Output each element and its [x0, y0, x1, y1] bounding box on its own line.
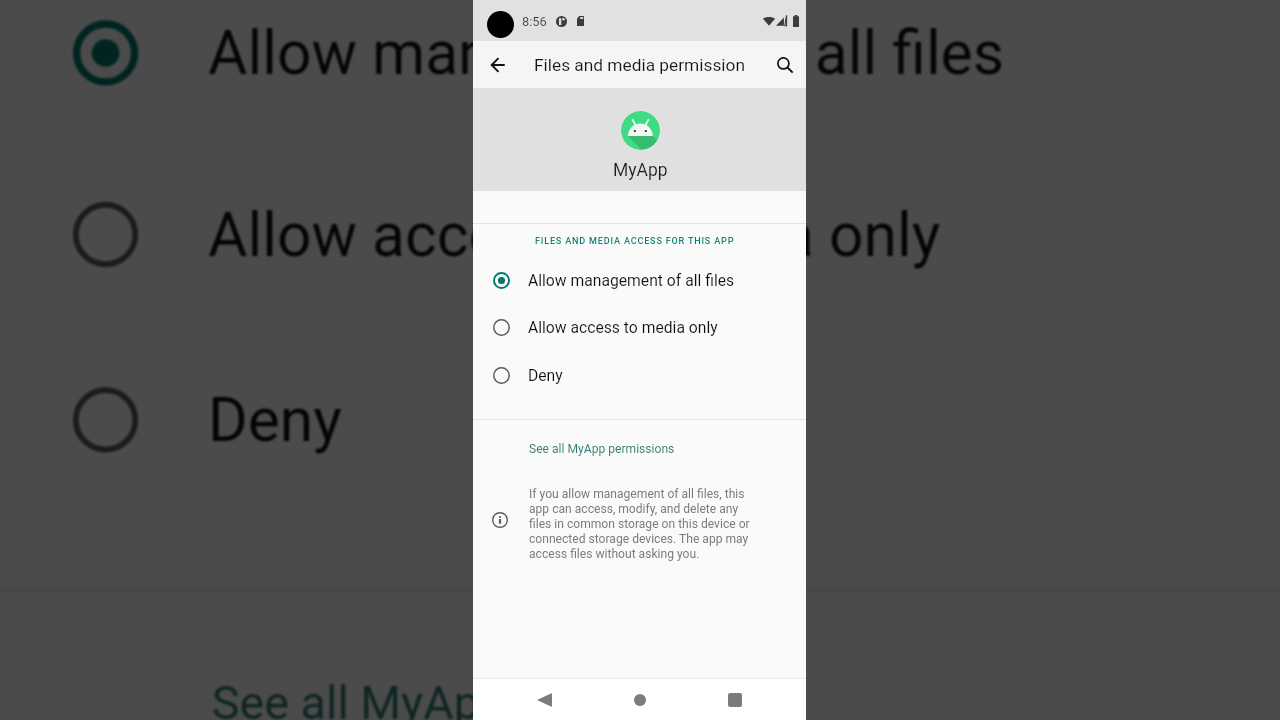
button[interactable]: Allow access to media only: [0, 140, 1280, 325]
staticText: See all MyApp permissions: [212, 677, 776, 720]
button[interactable]: Allow access to media only: [473, 303, 806, 351]
staticText: Deny: [528, 366, 563, 384]
staticText: MyApp: [613, 160, 668, 181]
staticText: Allow access to media only: [528, 318, 718, 336]
staticText: Allow management of all files: [208, 16, 1007, 86]
button[interactable]: Deny: [0, 325, 1280, 511]
button[interactable]: See all MyApp permissions: [0, 603, 1280, 720]
button[interactable]: Back: [478, 45, 518, 85]
button[interactable]: Deny: [473, 351, 806, 399]
button[interactable]: See all MyApp permissions: [473, 423, 806, 475]
staticText: If you allow management of all files, th…: [529, 487, 751, 561]
staticText: Deny: [208, 383, 343, 453]
button[interactable]: Allow management of all files: [0, 0, 1280, 144]
button[interactable]: Search: [765, 45, 805, 85]
button[interactable]: Back: [514, 679, 574, 720]
staticText: Allow access to media only: [208, 198, 942, 267]
button[interactable]: Recent apps: [705, 679, 765, 720]
button[interactable]: Home: [610, 679, 670, 720]
button[interactable]: Allow management of all files: [473, 256, 806, 304]
staticText: 8:56: [522, 14, 547, 29]
staticText: Files and media permission: [534, 55, 745, 75]
staticText: FILES AND MEDIA ACCESS FOR THIS APP: [535, 236, 735, 247]
staticText: Allow management of all files: [528, 271, 735, 289]
staticText: See all MyApp permissions: [529, 442, 675, 456]
